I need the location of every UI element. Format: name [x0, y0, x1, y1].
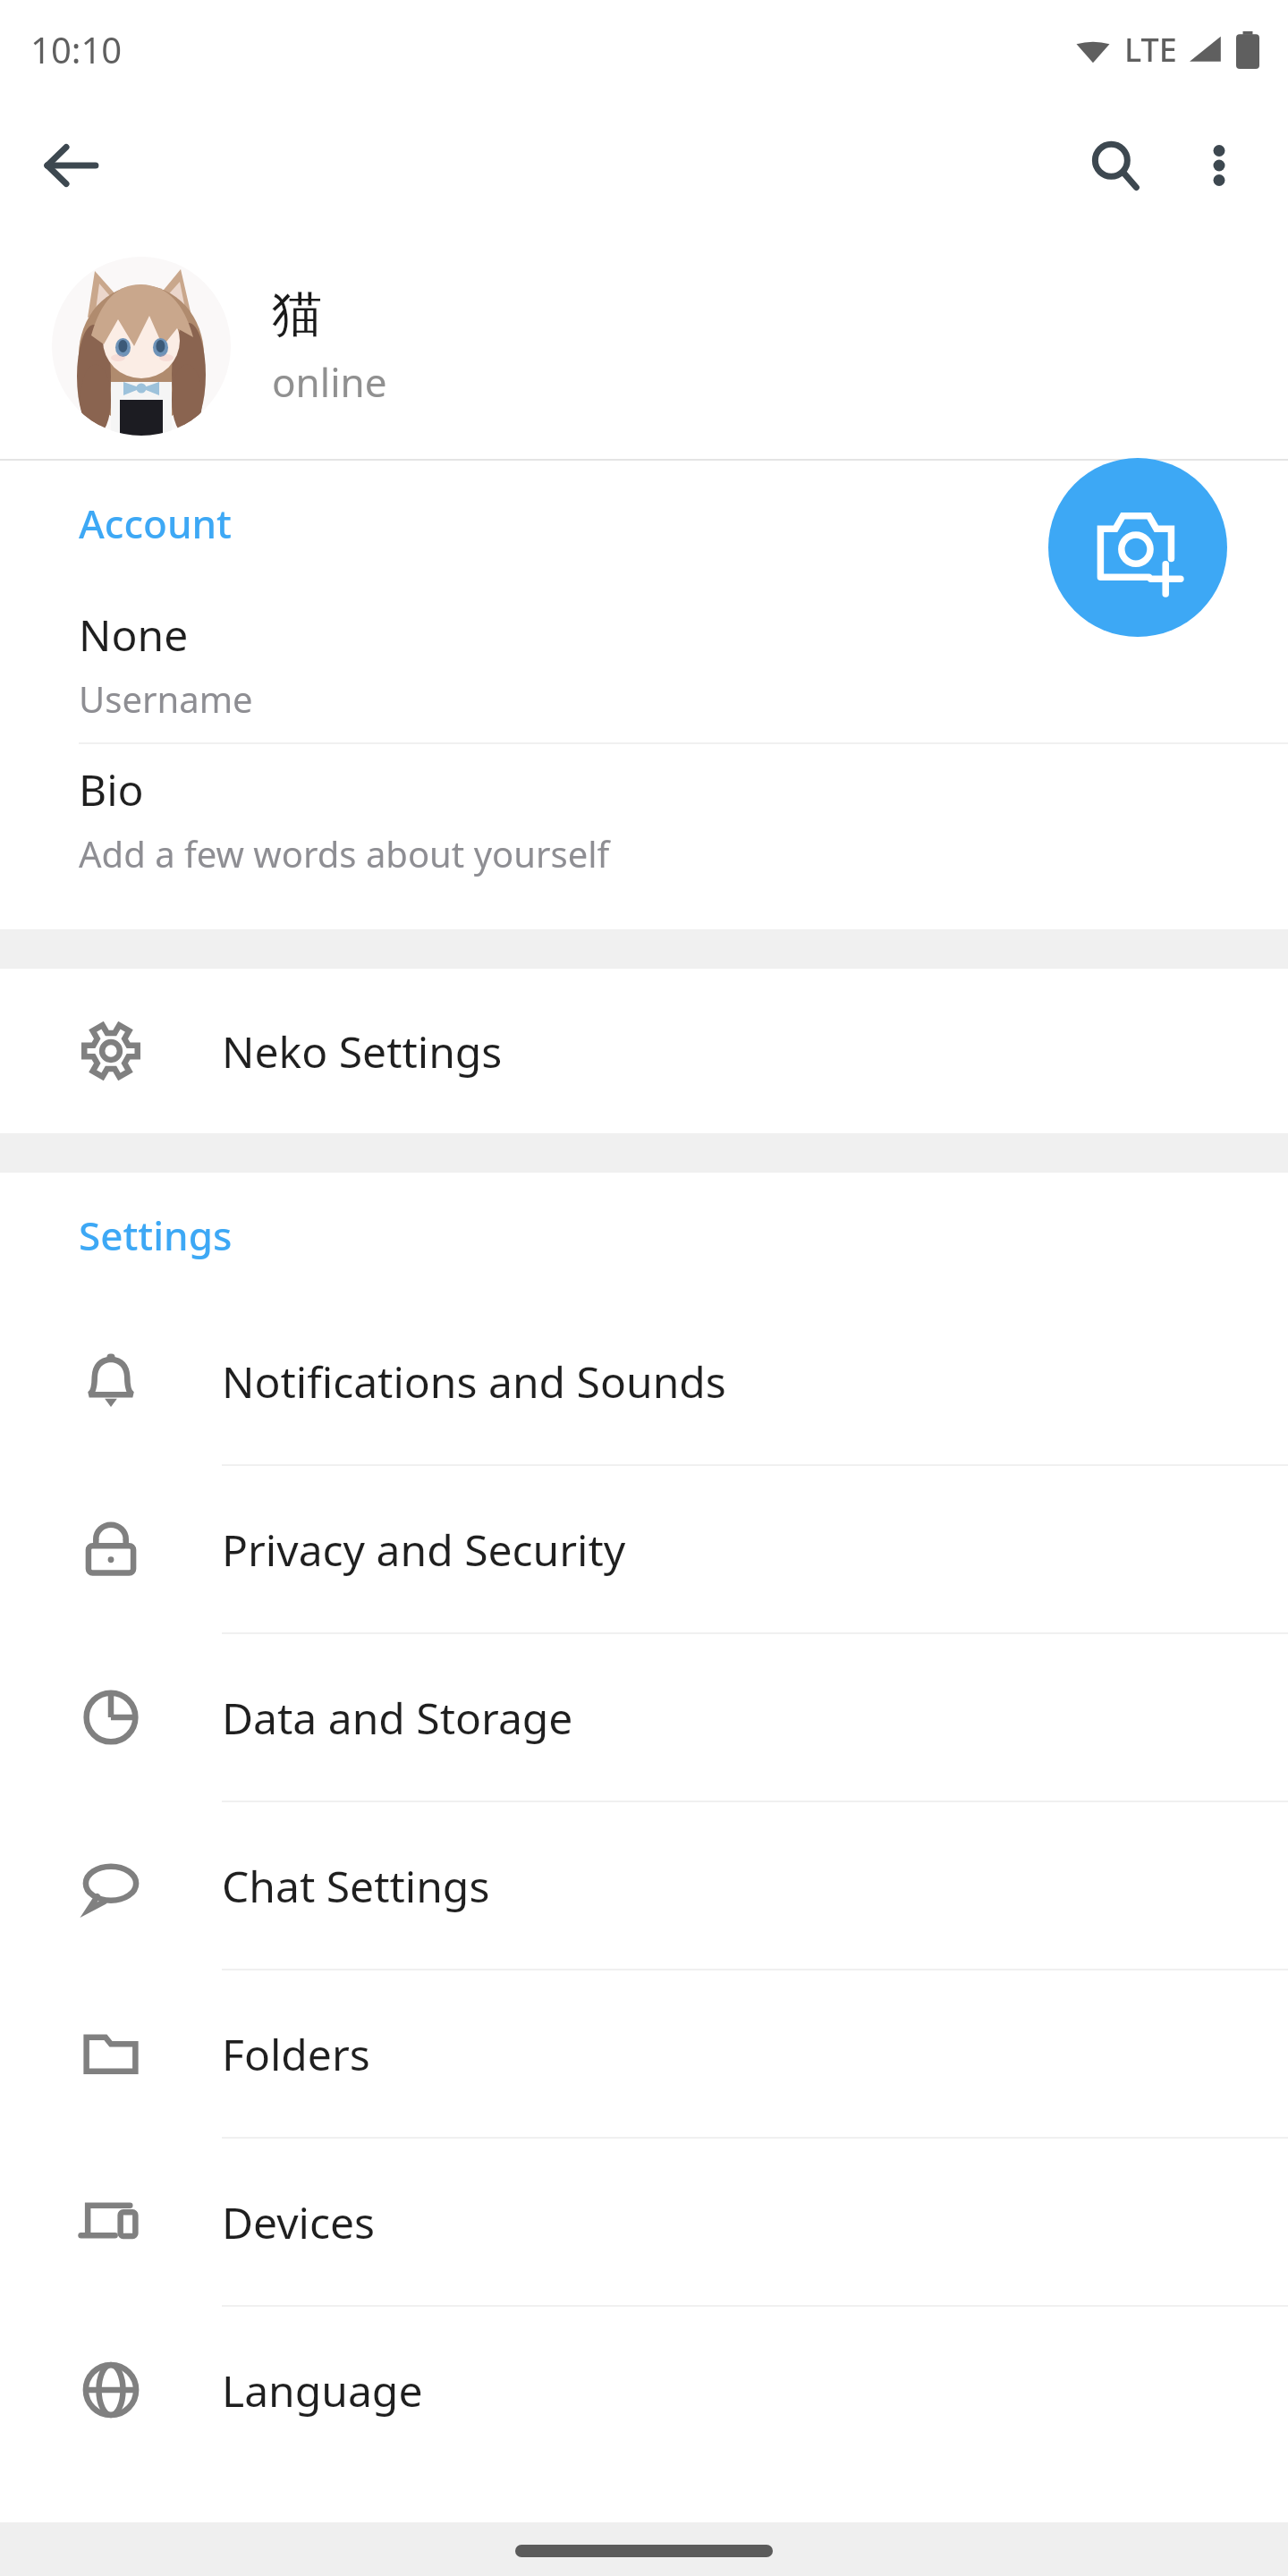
- button[interactable]: Set profile photo: [1048, 458, 1227, 637]
- button[interactable]: 猫: [0, 233, 1288, 459]
- staticText: Account: [79, 496, 232, 550]
- button[interactable]: Folders: [0, 1970, 1288, 2137]
- staticText: 10:10: [30, 25, 123, 73]
- staticText: Privacy and Security: [222, 1521, 626, 1579]
- button[interactable]: Back: [21, 116, 120, 215]
- button[interactable]: Bio: [0, 744, 1288, 897]
- staticText: Bio: [79, 760, 144, 818]
- button[interactable]: None: [0, 589, 1288, 742]
- staticText: Neko Settings: [222, 1022, 503, 1080]
- button[interactable]: Search: [1066, 116, 1165, 215]
- button[interactable]: Neko Settings: [0, 969, 1288, 1133]
- staticText: Settings: [79, 1208, 233, 1262]
- button[interactable]: Devices: [0, 2139, 1288, 2305]
- button[interactable]: More options: [1170, 116, 1268, 215]
- staticText: Add a few words about yourself: [79, 829, 610, 877]
- staticText: Data and Storage: [222, 1689, 573, 1747]
- staticText: Notifications and Sounds: [222, 1352, 726, 1411]
- staticText: Folders: [222, 2025, 370, 2083]
- staticText: Chat Settings: [222, 1857, 490, 1915]
- button[interactable]: Privacy and Security: [0, 1466, 1288, 1632]
- staticText: Devices: [222, 2193, 376, 2251]
- button[interactable]: Language: [0, 2307, 1288, 2473]
- staticText: Username: [79, 674, 253, 723]
- button[interactable]: Data and Storage: [0, 1634, 1288, 1801]
- staticText: None: [79, 606, 189, 664]
- staticText: online: [272, 355, 387, 409]
- staticText: Language: [222, 2361, 423, 2419]
- staticText: LTE: [1124, 28, 1177, 72]
- staticText: 猫: [272, 283, 322, 346]
- button[interactable]: Chat Settings: [0, 1802, 1288, 1969]
- button[interactable]: Notifications and Sounds: [0, 1298, 1288, 1464]
